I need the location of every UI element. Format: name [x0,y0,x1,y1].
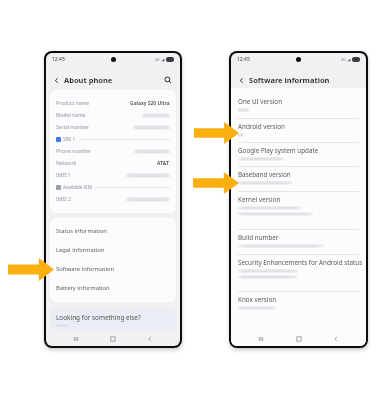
staticText: Galaxy S20 Ultra [130,100,170,107]
button[interactable]: IMEI 2 [50,193,176,205]
button[interactable]: Baseband version [231,167,366,192]
staticText: Serial number [56,124,90,131]
staticText: About phone [64,75,113,85]
button[interactable]: Network [50,157,176,169]
staticText: Phone number [56,148,92,155]
button[interactable]: Back [329,332,343,346]
staticText: Security Enhancements for Android status [238,258,363,267]
button[interactable]: Security Enhancements for Android status [231,255,366,292]
button[interactable]: Serial number [50,121,176,133]
staticText: Network [56,160,77,167]
button[interactable]: Looking for something else? [50,308,176,331]
staticText: Product name [56,100,90,107]
staticText: Legal information [56,246,105,254]
button[interactable]: Legal information [50,240,176,259]
button[interactable]: Battery information [50,278,176,297]
button[interactable]: Knox version [231,292,366,320]
staticText: Android version [238,122,285,131]
staticText: Software information [56,265,114,273]
staticText: 12:45 [52,56,65,63]
staticText: Model name [56,112,86,119]
staticText: Status information [56,227,107,235]
staticText: Build number [238,233,279,242]
staticText: 12:45 [237,56,250,63]
staticText: 4G [155,57,160,62]
button[interactable]: IMEI 1 [50,169,176,181]
staticText: AT&T [157,160,170,167]
button[interactable]: Back [50,74,62,86]
staticText: SIM 1 [63,136,76,142]
button[interactable]: Status information [50,221,176,240]
staticText: One UI version [238,97,283,106]
button[interactable]: Build number [231,230,366,255]
button[interactable]: One UI version [231,94,366,119]
button[interactable]: Back [235,74,247,86]
staticText: 4G [341,57,346,62]
staticText: Looking for something else? [56,313,141,322]
staticText: Battery information [56,284,110,292]
button[interactable]: Back [143,332,157,346]
button[interactable]: Recents [254,332,268,346]
button[interactable]: Search [162,74,174,86]
button[interactable]: Phone number [50,145,176,157]
button[interactable]: Product name [50,97,176,109]
staticText: IMEI 1 [56,172,71,179]
staticText: Software information [249,75,330,85]
button[interactable]: Home [106,332,120,346]
staticText: Available SIM [63,184,92,190]
staticText: Knox version [238,295,277,304]
button[interactable]: Android version [231,119,366,143]
button[interactable]: Recents [69,332,83,346]
staticText: Kernel version [238,195,281,204]
staticText: IMEI 2 [56,196,71,203]
button[interactable]: Model name [50,109,176,121]
button[interactable]: Home [292,332,306,346]
button[interactable]: Software information [50,259,176,278]
staticText: Google Play system update [238,146,319,155]
staticText: Baseband version [238,170,291,179]
button[interactable]: Google Play system update [231,143,366,167]
button[interactable]: Kernel version [231,192,366,230]
